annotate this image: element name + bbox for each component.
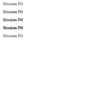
staticText: Simulate Pill <box>3 10 23 14</box>
staticText: Simulate Pill <box>3 2 23 6</box>
staticText: Simulate Pill <box>3 34 23 38</box>
staticText: Simulate Pill <box>3 18 23 22</box>
staticText: Simulate Pill <box>3 26 23 30</box>
